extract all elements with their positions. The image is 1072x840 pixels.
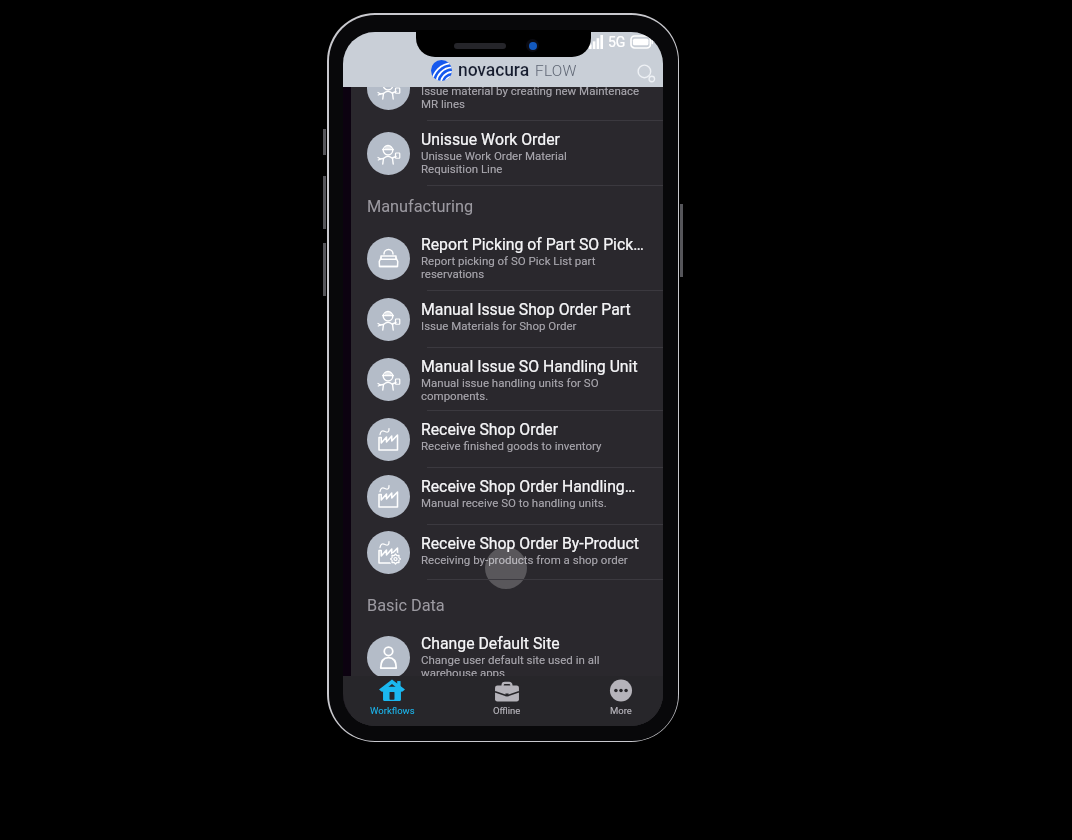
button[interactable]: Manual Issue Shop Order Part	[351, 291, 663, 348]
staticText: Basic Data	[367, 596, 445, 615]
staticText: reservations	[421, 267, 485, 280]
button[interactable]: Workflows	[355, 676, 429, 726]
staticText: Change user default site used in all	[421, 653, 600, 666]
staticText: 5G	[608, 34, 626, 50]
staticText: Manual receive SO to handling units.	[421, 496, 607, 509]
staticText: Manufacturing	[367, 197, 474, 216]
staticText: warehouse apps	[421, 666, 506, 679]
staticText: Unissue Work Order Material	[421, 149, 567, 162]
staticText: Change Default Site	[421, 634, 560, 653]
staticText: FLOW	[535, 62, 577, 80]
button[interactable]: Report Picking of Part SO Pick…	[351, 226, 663, 291]
staticText: Report picking of SO Pick List part	[421, 254, 596, 267]
staticText: More	[610, 705, 632, 716]
staticText: Issue Materials for Shop Order	[421, 319, 577, 332]
staticText: components.	[421, 389, 489, 402]
staticText: Manual Issue SO Handling Unit	[421, 357, 638, 376]
staticText: Requisition Line	[421, 162, 503, 175]
staticText: Offline	[493, 705, 521, 716]
staticText: Receive Shop Order Handling…	[421, 477, 636, 496]
button[interactable]: Change Default Site	[351, 625, 663, 690]
button[interactable]: Receive Shop Order By-Product	[351, 525, 663, 580]
staticText: Receive Shop Order By-Product	[421, 534, 639, 553]
button[interactable]: Offline	[470, 676, 544, 726]
staticText: Workflows	[370, 705, 415, 716]
staticText: Report Picking of Part SO Pick…	[421, 235, 644, 254]
staticText: Receive Shop Order	[421, 420, 559, 439]
staticText: Manual issue handling units for SO	[421, 376, 599, 389]
button[interactable]: Receive Shop Order	[351, 411, 663, 468]
staticText: Manual Issue Shop Order Part	[421, 300, 631, 319]
button[interactable]: Unissue Work Order	[351, 121, 663, 186]
staticText: Receiving by-products from a shop order	[421, 553, 628, 566]
button[interactable]: Issue Work Order Material	[351, 87, 663, 121]
staticText: Receive finished goods to inventory	[421, 439, 602, 452]
staticText: novacura	[458, 60, 530, 81]
button[interactable]: Search	[628, 55, 663, 91]
staticText: Issue material by creating new Maintenac…	[421, 87, 640, 97]
button[interactable]: Manual Issue SO Handling Unit	[351, 348, 663, 411]
staticText: MR lines	[421, 97, 465, 110]
button[interactable]: Receive Shop Order Handling…	[351, 468, 663, 525]
staticText: Unissue Work Order	[421, 130, 560, 149]
button[interactable]: More	[584, 676, 658, 726]
